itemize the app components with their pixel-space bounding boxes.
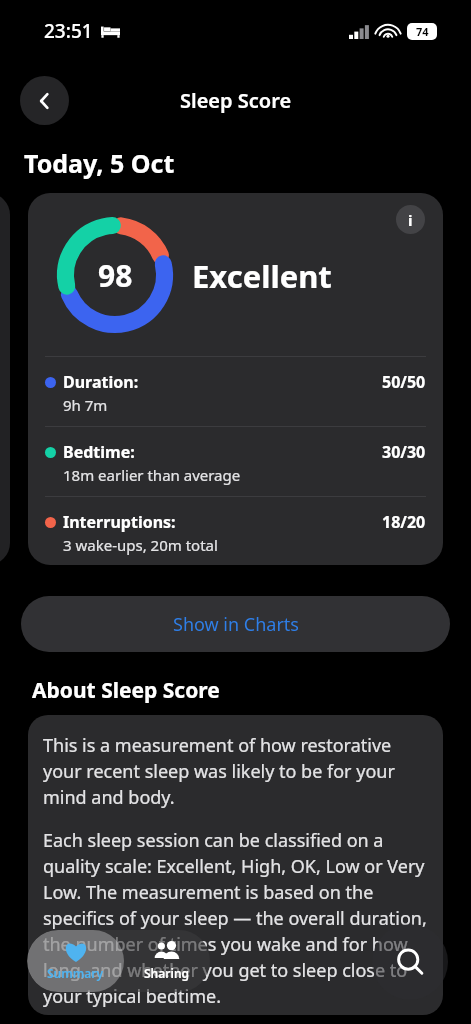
button[interactable]: Info (28, 193, 443, 565)
staticText: 18/20 (382, 511, 426, 533)
staticText: i (408, 210, 413, 230)
button[interactable]: Bedtime: (28, 426, 443, 496)
staticText: Summary (47, 965, 104, 981)
button[interactable]: Duration: (28, 356, 443, 426)
staticText: 3 wake-ups, 20m total (63, 535, 218, 555)
staticText: Each sleep session can be classified on … (43, 828, 431, 1009)
staticText: 18m earlier than average (63, 465, 241, 485)
staticText: About Sleep Score (32, 676, 220, 705)
button[interactable]: Info (396, 205, 425, 234)
staticText: Today, 5 Oct (24, 146, 175, 180)
button[interactable]: Sharing (124, 930, 210, 992)
staticText: Bedtime: (63, 441, 135, 463)
staticText: Excellent (192, 255, 332, 297)
staticText: 9h 7m (63, 395, 108, 415)
staticText: This is a measurement of how restorative… (43, 733, 431, 810)
staticText: Show in Charts (173, 612, 299, 637)
button[interactable]: Back (20, 76, 69, 125)
staticText: Duration: (63, 371, 139, 393)
staticText: 23:51 (44, 18, 93, 44)
staticText: 74 (416, 24, 429, 39)
staticText: Sleep Score (180, 87, 292, 114)
staticText: Sharing (144, 965, 190, 981)
button[interactable]: Summary (27, 930, 124, 992)
button[interactable]: Show in Charts (21, 596, 450, 652)
staticText: 50/50 (382, 371, 426, 393)
staticText: Interruptions: (63, 511, 176, 533)
button[interactable]: Search (372, 924, 448, 1000)
button[interactable]: Interruptions: (28, 496, 443, 565)
staticText: 30/30 (382, 441, 426, 463)
staticText: 98 (98, 255, 133, 296)
